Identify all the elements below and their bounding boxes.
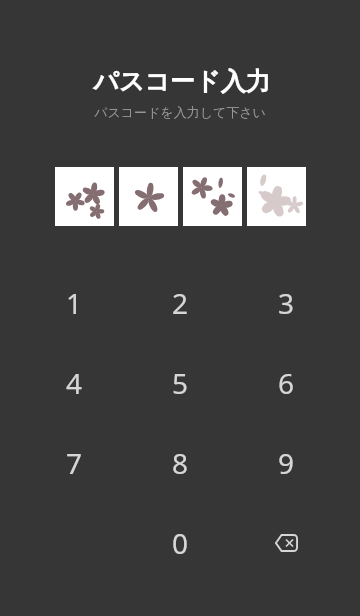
- staticText: 3: [278, 284, 295, 322]
- button[interactable]: 8: [127, 423, 233, 503]
- staticText: 9: [278, 444, 295, 482]
- staticText: 0: [172, 524, 189, 562]
- staticText: 1: [66, 284, 83, 322]
- button[interactable]: 1: [21, 263, 127, 343]
- button[interactable]: 3: [233, 263, 339, 343]
- button[interactable]: 5: [127, 343, 233, 423]
- staticText: 7: [66, 444, 83, 482]
- button[interactable]: 0: [127, 503, 233, 583]
- button[interactable]: 7: [21, 423, 127, 503]
- button[interactable]: 4: [21, 343, 127, 423]
- button[interactable]: Delete: [233, 503, 339, 583]
- button[interactable]: 2: [127, 263, 233, 343]
- staticText: パスコード入力: [93, 66, 271, 97]
- button[interactable]: 6: [233, 343, 339, 423]
- staticText: 5: [172, 364, 189, 402]
- staticText: 8: [172, 444, 189, 482]
- staticText: 4: [66, 364, 83, 402]
- button[interactable]: 9: [233, 423, 339, 503]
- staticText: 6: [278, 364, 295, 402]
- staticText: 2: [172, 284, 189, 322]
- staticText: パスコードを入力して下さい: [94, 104, 266, 120]
